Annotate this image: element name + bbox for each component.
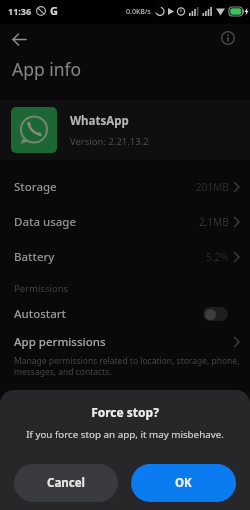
button[interactable]	[8, 28, 30, 50]
staticText: Force stop?	[0, 404, 250, 420]
staticText: 2,1MB	[199, 215, 229, 229]
staticText: App info	[12, 57, 82, 81]
staticText: G	[50, 3, 58, 18]
staticText: Data usage	[14, 214, 77, 230]
button[interactable]: Data usage	[0, 205, 250, 239]
button[interactable]: OK	[131, 464, 236, 502]
button[interactable]	[217, 27, 238, 48]
staticText: 0.0KB/s	[126, 7, 151, 17]
button[interactable]: WhatsApp	[0, 100, 250, 160]
button[interactable]: Cancel	[14, 464, 118, 502]
staticText: 201MB	[196, 180, 229, 194]
staticText: Version: 2.21.13.2	[70, 135, 149, 148]
staticText: Autostart	[14, 306, 67, 322]
staticText: Permissions	[14, 282, 69, 295]
staticText: Manage permissions related to location, …	[14, 355, 240, 377]
staticText: If you force stop an app, it may misbeha…	[0, 428, 250, 441]
staticText: Storage	[14, 179, 57, 195]
button[interactable]: App permissions	[0, 332, 250, 377]
button[interactable]: Autostart	[0, 300, 250, 328]
button[interactable]: Battery	[0, 240, 250, 274]
staticText: WhatsApp	[70, 113, 129, 129]
button[interactable]	[203, 307, 228, 321]
staticText: Cancel	[47, 475, 85, 491]
staticText: 5.2%	[206, 250, 229, 264]
staticText: Battery	[14, 249, 55, 265]
button[interactable]: Storage	[0, 170, 250, 204]
staticText: 11:36	[8, 5, 32, 17]
staticText: OK	[175, 475, 192, 491]
staticText: App permissions	[14, 334, 106, 350]
